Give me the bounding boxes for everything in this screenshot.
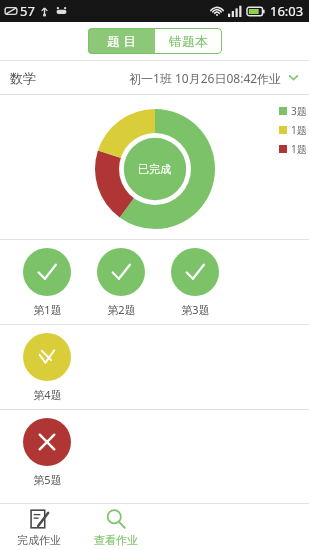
staticText: 完成作业	[17, 533, 61, 547]
button[interactable]: 查看作业	[77, 504, 154, 550]
button[interactable]: 完成作业	[0, 504, 77, 550]
staticText: 第1题	[33, 302, 62, 317]
button[interactable]: 第5题	[10, 418, 84, 487]
staticText: 数学	[10, 70, 36, 86]
staticText: 57	[20, 2, 35, 20]
button[interactable]: 数学	[0, 61, 309, 94]
staticText: 第3题	[181, 302, 210, 317]
staticText: 题 目	[107, 32, 137, 50]
staticText: 3题	[291, 104, 307, 118]
staticText: 1题	[291, 123, 307, 137]
staticText: 第2题	[107, 302, 136, 317]
staticText: 第4题	[33, 387, 62, 402]
staticText: 错题本	[169, 33, 208, 49]
staticText: 初一1班 10月26日08:42作业	[129, 70, 282, 86]
staticText: 16:03	[270, 2, 304, 20]
button[interactable]: 错题本	[155, 28, 222, 54]
staticText: 1题	[291, 142, 307, 156]
staticText: 查看作业	[94, 533, 138, 547]
button[interactable]: 题 目	[88, 28, 155, 54]
button[interactable]: 第2题	[84, 248, 158, 317]
button[interactable]: 第4题	[10, 333, 84, 402]
button[interactable]: 第3题	[158, 248, 232, 317]
staticText: 第5题	[33, 472, 62, 487]
button[interactable]: 第1题	[10, 248, 84, 317]
staticText: 已完成	[138, 162, 171, 176]
